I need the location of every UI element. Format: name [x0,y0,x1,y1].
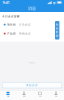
staticText: 群 [56,30,59,34]
button[interactable]: 消息 [0,92,16,97]
staticText: 产品部 [7,32,16,35]
staticText: 今日会议提醒 [2,15,20,18]
button[interactable]: 发 [55,21,59,39]
staticText: 消息 [7,96,9,97]
staticText: 我的 [55,96,57,97]
staticText: 周例会议 [19,32,31,35]
button[interactable]: 通讯录 [16,92,32,97]
button[interactable]: 产品部 [4,32,64,35]
staticText: 聊 [56,34,59,38]
staticText: 发起会议 [26,84,38,87]
staticText: 工作台 [38,96,41,97]
staticText: 发 [56,23,59,26]
staticText: 项目组 [7,23,16,26]
staticText: 起 [56,27,59,30]
button[interactable]: 我的 [48,92,64,97]
staticText: 9:41 [2,0,9,5]
staticText: 消息 [28,6,36,11]
button[interactable]: 工作台 [32,92,48,97]
staticText: 讨论会议 [19,23,31,26]
button[interactable]: 发起会议 [2,82,62,88]
button[interactable]: 项目组 [4,23,64,26]
staticText: 通讯录 [22,96,25,97]
staticText: 没有更多会议了 [28,62,35,63]
